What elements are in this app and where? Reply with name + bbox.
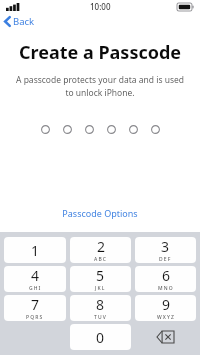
staticText: 1 [31,241,40,260]
staticText: ABC [94,256,108,263]
staticText: PQRS [26,314,44,321]
staticText: Back [13,15,35,28]
staticText: 6 [162,266,171,285]
staticText: WXYZ [157,314,175,321]
staticText: 7 [31,295,40,314]
staticText: 8 [96,295,105,314]
button[interactable]: Passcode Options [0,204,200,222]
staticText: 9 [162,295,171,314]
button[interactable]: 3 [135,237,196,263]
button[interactable]: 8 [70,295,131,321]
button[interactable]: 6 [135,266,196,292]
button[interactable]: 0 [70,324,131,350]
staticText: Create a Passcode [0,40,200,65]
staticText: DEF [159,256,172,263]
button[interactable]: 2 [70,237,131,263]
staticText: A passcode protects your data and is use… [10,74,190,99]
staticText: JKL [95,285,106,292]
staticText: GHI [29,285,42,292]
staticText: 5 [96,266,105,285]
button[interactable]: 9 [135,295,196,321]
staticText: MNO [158,285,174,292]
button[interactable]: 1 [4,237,66,263]
button[interactable]: 7 [4,295,66,321]
button[interactable]: Delete [135,324,196,350]
staticText: 4 [31,266,40,285]
staticText: TUV [94,314,107,321]
staticText: 3 [161,237,170,256]
button[interactable]: Back [0,13,43,30]
staticText: 2 [97,237,106,256]
staticText: 0 [96,328,105,347]
staticText: 10:00 [90,1,111,12]
button[interactable]: 5 [70,266,131,292]
button[interactable]: 4 [4,266,66,292]
